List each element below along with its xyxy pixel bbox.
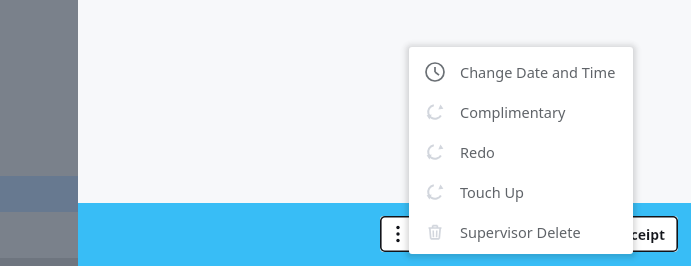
staticText: Redo: [460, 142, 495, 162]
button[interactable]: Complimentary: [409, 92, 633, 132]
button[interactable]: More options: [380, 216, 416, 252]
button[interactable]: Change Date and Time: [409, 52, 633, 92]
staticText: Touch Up: [460, 182, 524, 202]
button[interactable]: Supervisor Delete: [409, 212, 633, 252]
staticText: Supervisor Delete: [460, 222, 581, 242]
button[interactable]: Print Receipt: [548, 216, 678, 252]
staticText: Print Receipt: [575, 225, 666, 244]
button[interactable]: Touch Up: [409, 172, 633, 212]
staticText: Complimentary: [460, 102, 566, 122]
staticText: Change Date and Time: [460, 62, 616, 82]
button[interactable]: Redo: [409, 132, 633, 172]
